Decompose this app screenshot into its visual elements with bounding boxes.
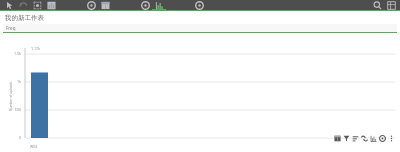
button[interactable]: Table view: [333, 134, 341, 142]
staticText: 0: [18, 135, 21, 140]
staticText: Freq: [6, 25, 16, 31]
button[interactable]: Selection: [30, 0, 44, 11]
button[interactable]: More settings: [192, 0, 206, 11]
button[interactable]: More options: [387, 134, 395, 142]
button[interactable]: Search: [370, 0, 384, 11]
button[interactable]: Settings: [378, 134, 386, 142]
button[interactable]: Select tool: [2, 0, 16, 11]
button[interactable]: Freq: [3, 24, 397, 33]
button[interactable]: Settings: [84, 0, 98, 11]
button[interactable]: Table: [98, 0, 112, 11]
staticText: 1k: [17, 79, 21, 84]
button[interactable]: Bar chart: [152, 0, 166, 11]
button[interactable]: 我的新工作表: [0, 11, 400, 24]
button[interactable]: Undo: [16, 0, 30, 11]
button[interactable]: Chart: [44, 0, 58, 11]
button[interactable]: Chart type: [369, 134, 377, 142]
staticText: 我的新工作表: [5, 14, 44, 22]
staticText: 500: [14, 107, 21, 112]
staticText: Number of uploads: [9, 81, 13, 111]
button[interactable]: Sort: [351, 134, 359, 142]
staticText: 1.17k: [31, 46, 41, 51]
button[interactable]: Filter: [342, 134, 350, 142]
button[interactable]: Grid view: [384, 0, 398, 11]
button[interactable]: Options: [138, 0, 152, 11]
staticText: WGS: [30, 144, 38, 149]
staticText: 1.5k: [14, 51, 21, 56]
button[interactable]: Share link: [360, 134, 368, 142]
